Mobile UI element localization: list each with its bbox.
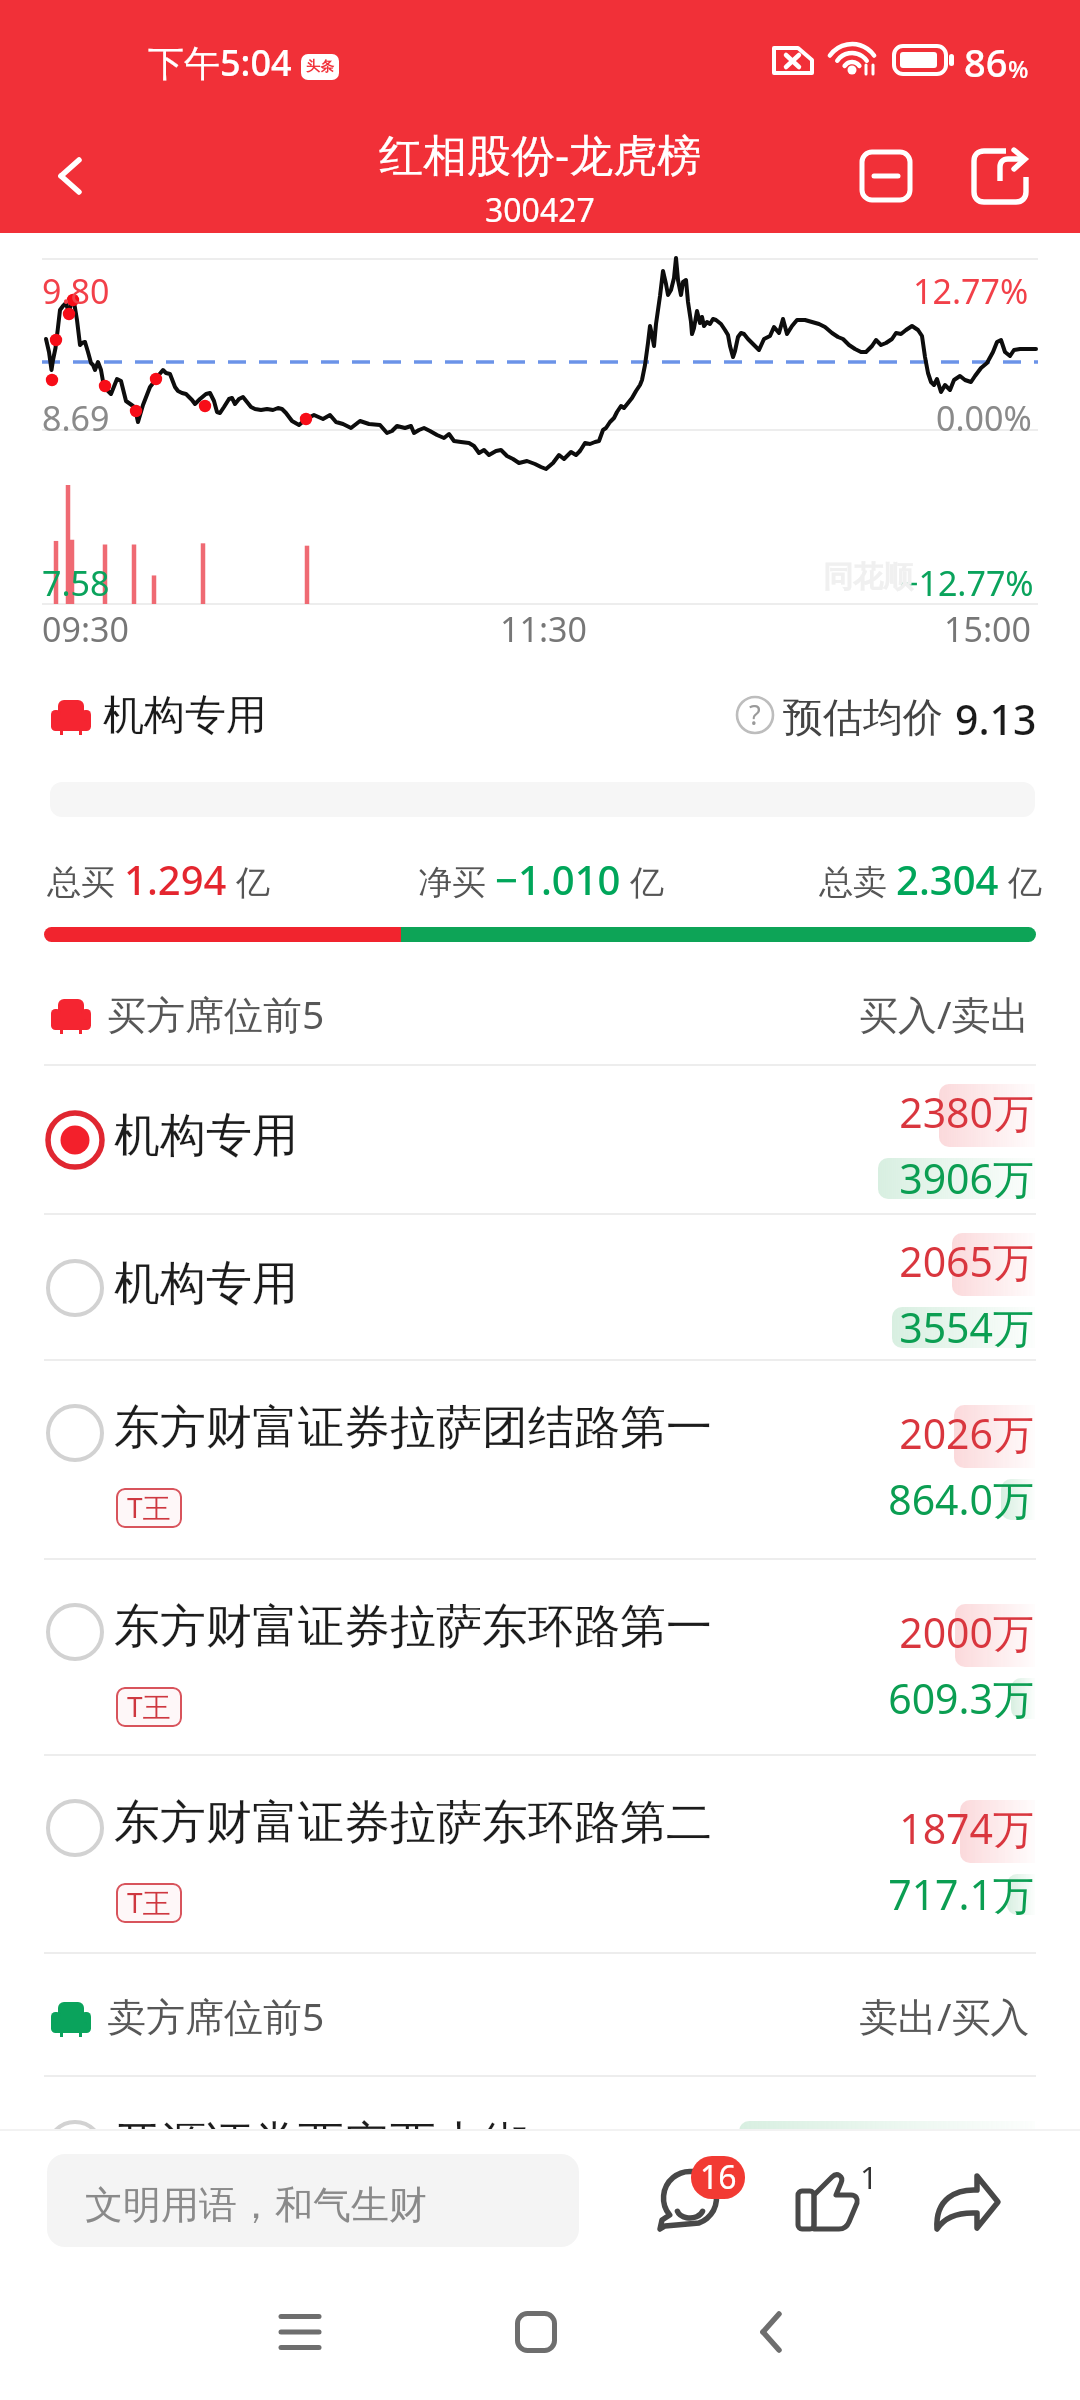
staticText: 0.00% xyxy=(936,395,1032,441)
staticText: 净买 xyxy=(418,861,486,904)
staticText: 东方财富证券拉萨东环路第二 xyxy=(114,1794,712,1852)
staticText: 12.77% xyxy=(913,268,1029,314)
button[interactable]: 机构专用 xyxy=(0,1215,1080,1361)
staticText: 买方席位前5 xyxy=(107,987,325,1040)
staticText: 16 xyxy=(700,2156,737,2198)
staticText: 机构专用 xyxy=(114,1107,298,1165)
staticText: 717.1万 xyxy=(700,1866,1034,1922)
staticText: 11:30 xyxy=(500,606,587,652)
staticText: 300427 xyxy=(485,188,595,232)
staticText: −1.010 xyxy=(495,852,621,906)
staticText: 卖方席位前5 xyxy=(107,1989,325,2042)
button[interactable]: Help xyxy=(736,696,774,734)
staticText: 下午5:04 xyxy=(148,38,292,87)
button[interactable]: 买方席位前5 xyxy=(51,960,1030,1066)
staticText: 15:00 xyxy=(944,606,1031,652)
staticText: ? xyxy=(749,696,761,733)
button[interactable]: Share xyxy=(920,2149,1020,2249)
staticText: T王 xyxy=(127,1883,171,1921)
staticText: 机构专用 xyxy=(114,1255,298,1313)
staticText: 东方财富证券拉萨东环路第一 xyxy=(114,1598,712,1656)
staticText: 开源证券西安西大街 xyxy=(114,2115,528,2173)
staticText: 2000万 xyxy=(700,1604,1034,1660)
button[interactable]: 东方财富证券拉萨东环路第一 xyxy=(0,1560,1080,1756)
staticText: 9.13 xyxy=(955,691,1037,747)
button[interactable]: 机构专用 xyxy=(0,1066,1080,1215)
staticText: 86 xyxy=(964,36,1008,88)
staticText: 预估均价 xyxy=(783,692,943,742)
staticText: T王 xyxy=(127,1488,171,1526)
staticText: 3554万 xyxy=(700,1299,1034,1355)
staticText: 卖出/买入 xyxy=(859,1989,1030,2042)
staticText: 1.294 xyxy=(124,852,227,906)
staticText: 2065万 xyxy=(700,1233,1034,1289)
staticText: 1874万 xyxy=(700,1800,1034,1856)
staticText: 09:30 xyxy=(42,606,129,652)
button[interactable]: Recents xyxy=(240,2272,360,2392)
button[interactable]: Like xyxy=(786,2149,886,2249)
staticText: T王 xyxy=(127,2204,171,2242)
staticText: 609.3万 xyxy=(700,1670,1034,1726)
staticText: 头条 xyxy=(306,58,334,76)
staticText: 864.0万 xyxy=(700,1471,1034,1527)
button[interactable]: 东方财富证券拉萨东环路第二 xyxy=(0,1756,1080,1954)
button[interactable]: 东方财富证券拉萨团结路第一 xyxy=(0,1361,1080,1560)
staticText: 3906万 xyxy=(700,1150,1034,1206)
staticText: 2026万 xyxy=(700,1405,1034,1461)
staticText: 文明用语，和气生财 xyxy=(85,2181,427,2229)
staticText: 7.58 xyxy=(42,560,110,606)
staticText: 同花顺 xyxy=(823,558,913,596)
button[interactable]: 开源证券西安西大街 xyxy=(0,2077,1080,2276)
staticText: 东方财富证券拉萨团结路第一 xyxy=(114,1399,712,1457)
staticText: −12.77% xyxy=(899,560,1034,606)
staticText: 4650万 xyxy=(700,2121,1034,2177)
staticText: 买入/卖出 xyxy=(859,987,1030,1040)
staticText: 2.304 xyxy=(896,852,999,906)
button[interactable]: 文明用语，和气生财 xyxy=(47,2154,579,2247)
staticText: 9.80 xyxy=(42,268,110,314)
staticText: 亿 xyxy=(236,861,270,904)
staticText: 机构专用 xyxy=(103,690,267,742)
staticText: 总买 xyxy=(47,861,115,904)
button[interactable]: 卖方席位前5 xyxy=(51,1954,1030,2077)
staticText: 8.69 xyxy=(42,395,110,441)
button[interactable]: Back xyxy=(712,2272,832,2392)
staticText: % xyxy=(1008,52,1029,85)
button[interactable]: Home xyxy=(476,2272,596,2392)
staticText: 2380万 xyxy=(700,1084,1034,1140)
staticText: 1200万 xyxy=(700,2187,1034,2243)
staticText: T王 xyxy=(127,1687,171,1725)
button[interactable]: Minimize xyxy=(836,126,936,226)
staticText: 总卖 xyxy=(819,861,887,904)
button[interactable]: Comments xyxy=(640,2141,752,2253)
staticText: 亿 xyxy=(1008,861,1042,904)
staticText: 红相股份-龙虎榜 xyxy=(379,124,702,184)
staticText: 1 xyxy=(860,2156,878,2198)
button[interactable]: Back xyxy=(24,128,120,224)
button[interactable]: Share xyxy=(950,126,1050,226)
staticText: 亿 xyxy=(630,861,664,904)
